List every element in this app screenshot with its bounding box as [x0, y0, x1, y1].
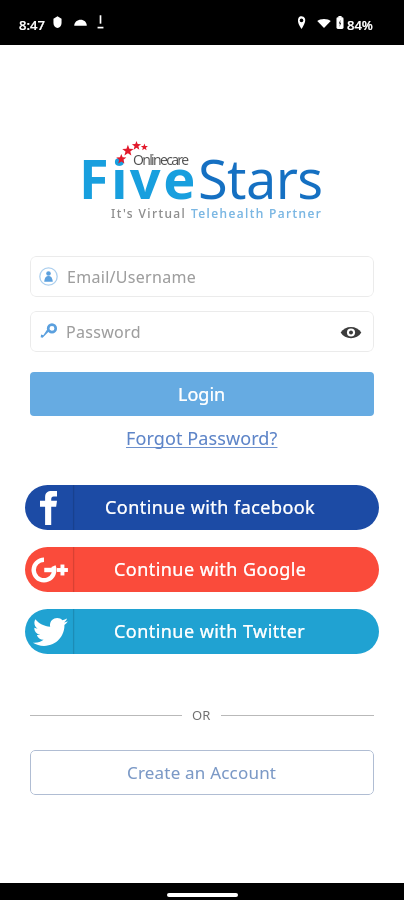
button[interactable]: Password: [30, 311, 374, 352]
button[interactable]: Create an Account: [30, 750, 374, 795]
button[interactable]: Show password: [339, 320, 363, 344]
staticText: Continue with Google: [114, 557, 307, 582]
button[interactable]: Email/Username: [30, 256, 374, 297]
staticText: Stars: [198, 141, 323, 215]
staticText: Onlinecare: [133, 150, 188, 169]
button[interactable]: Continue with Google: [25, 547, 379, 592]
staticText: Five: [79, 141, 198, 215]
staticText: Login: [178, 382, 226, 407]
staticText: Email/Username: [67, 266, 197, 288]
staticText: Create an Account: [127, 761, 277, 784]
staticText: Password: [66, 321, 141, 343]
staticText: 84%: [347, 16, 373, 34]
button[interactable]: Login: [30, 372, 374, 416]
button[interactable]: Forgot Password?: [122, 422, 282, 455]
staticText: Telehealth Partner: [191, 205, 323, 221]
staticText: 8:47: [19, 16, 45, 34]
button[interactable]: Continue with facebook: [25, 485, 379, 530]
staticText: OR: [192, 706, 211, 724]
staticText: It's Virtual: [111, 205, 191, 221]
staticText: Continue with facebook: [105, 495, 316, 520]
staticText: Forgot Password?: [126, 426, 278, 451]
button[interactable]: Continue with Twitter: [25, 609, 379, 654]
staticText: Continue with Twitter: [114, 619, 306, 644]
